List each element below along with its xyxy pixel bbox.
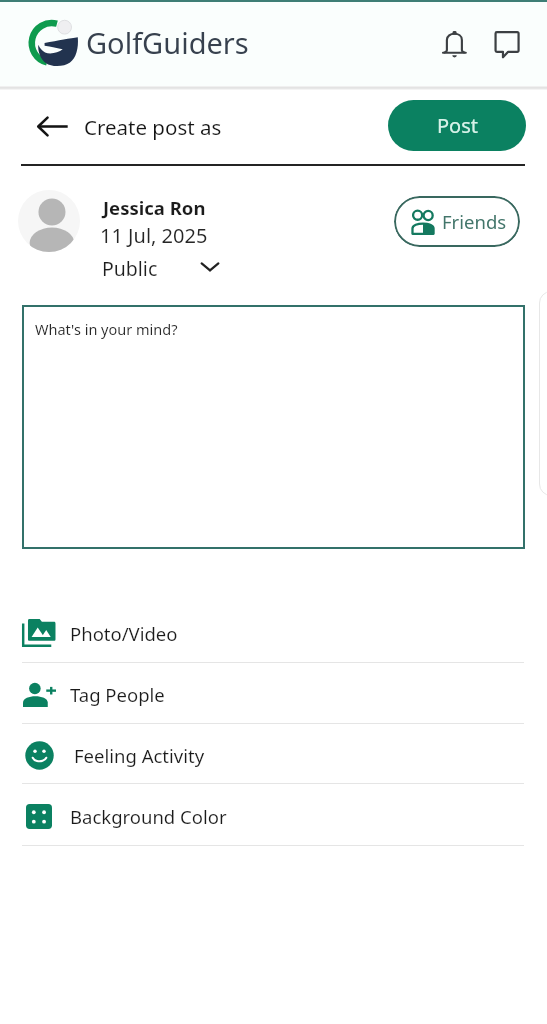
button[interactable]: Notifications xyxy=(432,21,478,67)
staticText: 11 Jul, 2025 xyxy=(100,222,208,249)
button[interactable]: Photo/Video xyxy=(0,603,547,663)
staticText: What's in your mind? xyxy=(35,319,178,339)
staticText: Create post as xyxy=(84,113,222,141)
staticText: Public xyxy=(102,255,158,282)
staticText: Background Color xyxy=(70,804,227,829)
button[interactable]: Feeling Activity xyxy=(0,725,547,785)
staticText: Feeling Activity xyxy=(74,743,205,768)
staticText: Friends xyxy=(442,209,507,234)
staticText: Post xyxy=(437,112,478,139)
staticText: Photo/Video xyxy=(70,621,178,646)
staticText: Jessica Ron xyxy=(103,195,206,220)
staticText: Tag People xyxy=(70,682,165,707)
button[interactable]: What's in your mind? xyxy=(22,305,525,549)
button[interactable]: Background Color xyxy=(0,786,547,846)
button[interactable]: Post xyxy=(388,100,526,151)
button[interactable]: Friends xyxy=(394,196,520,247)
button[interactable]: Back xyxy=(36,110,68,142)
button[interactable]: Tag People xyxy=(0,664,547,724)
staticText: GolfGuiders xyxy=(86,23,249,62)
button[interactable]: Messages xyxy=(484,21,530,67)
